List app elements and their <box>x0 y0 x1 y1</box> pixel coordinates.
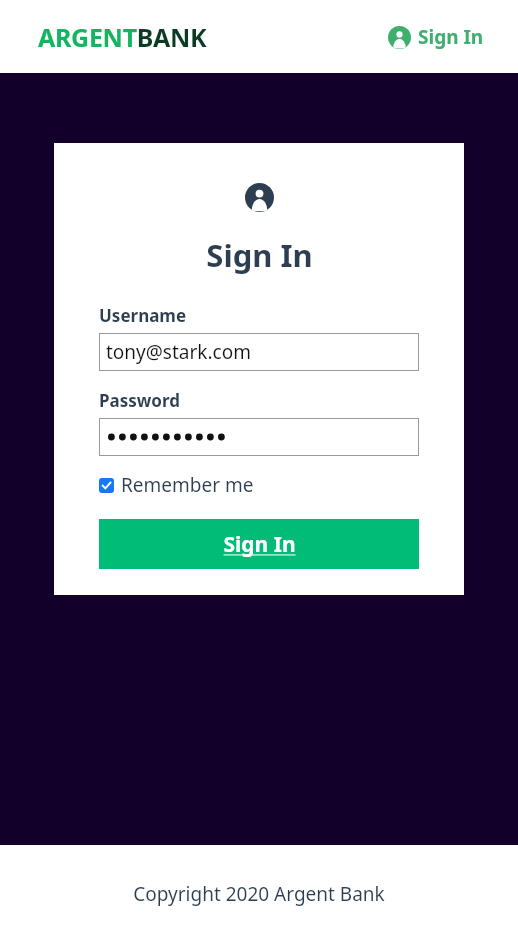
staticText: Sign In <box>206 234 313 276</box>
button[interactable]: Sign In <box>388 24 484 50</box>
button[interactable] <box>99 418 419 456</box>
staticText: Sign In <box>223 530 296 559</box>
other: Sign In <box>388 26 411 49</box>
button[interactable]: tony@stark.com <box>99 333 419 371</box>
staticText: Sign In <box>418 24 484 50</box>
staticText: Copyright 2020 Argent Bank <box>133 881 385 907</box>
staticText: tony@stark.com <box>106 339 251 365</box>
staticText: ARGENTBANK <box>38 20 207 54</box>
button[interactable]: ARGENTBANK <box>38 20 207 54</box>
staticText: Username <box>99 304 187 327</box>
button[interactable]: Sign In <box>99 519 419 569</box>
staticText: Password <box>99 389 180 412</box>
staticText: Remember me <box>121 472 254 498</box>
button[interactable]: Remember me <box>99 472 254 498</box>
